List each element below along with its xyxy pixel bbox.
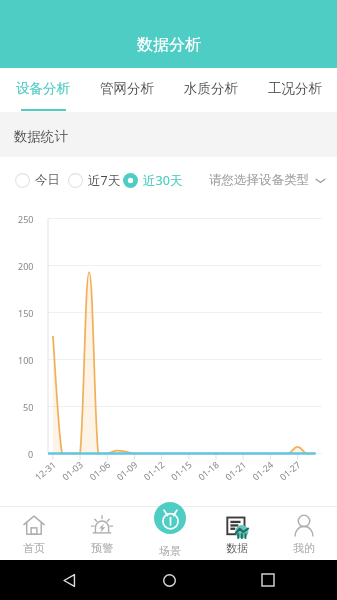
- staticText: 水质分析: [184, 80, 238, 97]
- staticText: 今日: [35, 172, 60, 188]
- button[interactable]: Scenes: [136, 507, 203, 560]
- staticText: 我的: [293, 541, 315, 555]
- button[interactable]: Back: [56, 567, 82, 593]
- button[interactable]: 近30天: [123, 172, 183, 189]
- staticText: 近30天: [143, 172, 183, 189]
- staticText: 数据分析: [137, 35, 201, 55]
- button[interactable]: 近7天: [68, 172, 121, 189]
- button[interactable]: 管网分析: [85, 68, 169, 112]
- button[interactable]: 请您选择设备类型: [209, 172, 326, 188]
- staticText: 数据统计: [14, 128, 68, 145]
- button[interactable]: Home: [156, 567, 182, 593]
- button[interactable]: 工况分析: [253, 68, 337, 112]
- other: Scenes: [154, 502, 186, 534]
- staticText: 首页: [23, 541, 45, 555]
- button[interactable]: Recent apps: [255, 567, 281, 593]
- button[interactable]: 今日: [15, 172, 60, 188]
- staticText: 请您选择设备类型: [209, 172, 309, 188]
- button[interactable]: 设备分析: [0, 68, 85, 112]
- staticText: 预警: [91, 541, 113, 555]
- staticText: 近7天: [88, 172, 121, 189]
- button[interactable]: 我的: [270, 507, 337, 560]
- staticText: 场景: [159, 544, 181, 558]
- button[interactable]: 首页: [0, 507, 68, 560]
- button[interactable]: 预警: [68, 507, 136, 560]
- button[interactable]: 数据: [203, 507, 270, 560]
- button[interactable]: 水质分析: [169, 68, 253, 112]
- staticText: 设备分析: [16, 80, 70, 97]
- staticText: 管网分析: [100, 80, 154, 97]
- staticText: 工况分析: [268, 80, 322, 97]
- staticText: 数据: [226, 541, 248, 555]
